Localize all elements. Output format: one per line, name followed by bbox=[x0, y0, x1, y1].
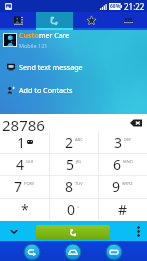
staticText: 28786 bbox=[2, 115, 45, 132]
staticText: 1 bbox=[17, 133, 26, 152]
button[interactable]: 2 bbox=[49, 131, 98, 153]
button[interactable]: More options bbox=[134, 224, 142, 238]
staticText: mer Care bbox=[39, 31, 70, 41]
staticText: DEF bbox=[124, 137, 132, 142]
staticText: TUV bbox=[75, 181, 83, 186]
button[interactable]: 4 bbox=[0, 153, 49, 175]
staticText: Mobile 121 bbox=[19, 42, 48, 49]
staticText: GHI bbox=[26, 159, 34, 164]
button[interactable]: 6 bbox=[98, 153, 147, 175]
staticText: MNO bbox=[123, 159, 133, 164]
staticText: 8 bbox=[65, 177, 74, 196]
staticText: + bbox=[77, 204, 80, 209]
button[interactable]: 3 bbox=[98, 131, 147, 153]
button[interactable]: * bbox=[0, 198, 49, 221]
staticText: PQRS bbox=[24, 181, 35, 186]
button[interactable]: Back bbox=[23, 243, 41, 261]
staticText: Add to Contacts bbox=[19, 85, 73, 95]
button[interactable]: Groups bbox=[110, 12, 147, 28]
button[interactable]: Add to Contacts bbox=[0, 83, 147, 97]
staticText: 2 bbox=[65, 133, 74, 152]
staticText: 5 bbox=[66, 155, 75, 174]
button[interactable]: 5 bbox=[49, 153, 98, 175]
button[interactable]: Home bbox=[64, 243, 82, 261]
button[interactable]: Favorites bbox=[73, 12, 110, 28]
button[interactable]: Collapse bbox=[7, 224, 21, 238]
staticText: 9 bbox=[112, 177, 121, 196]
staticText: 6 bbox=[113, 155, 122, 174]
button[interactable]: 8 bbox=[49, 175, 98, 198]
staticText: JKL bbox=[76, 159, 82, 164]
staticText: ABC bbox=[75, 137, 83, 142]
staticText: WXYZ bbox=[122, 181, 133, 186]
staticText: Custo bbox=[19, 31, 39, 41]
button[interactable]: Dialer bbox=[36, 12, 73, 28]
staticText: 21:22 bbox=[124, 1, 145, 12]
button[interactable]: Send text message bbox=[0, 60, 147, 74]
button[interactable]: 0 bbox=[49, 198, 98, 221]
button[interactable]: Custo bbox=[0, 31, 147, 49]
staticText: # bbox=[118, 200, 128, 219]
button[interactable]: 9 bbox=[98, 175, 147, 198]
staticText: 0 bbox=[67, 200, 76, 219]
staticText: 7 bbox=[14, 177, 23, 196]
staticText: 4 bbox=[16, 155, 25, 174]
button[interactable]: Call bbox=[36, 225, 110, 240]
button[interactable]: 7 bbox=[0, 175, 49, 198]
staticText: 68% bbox=[110, 3, 121, 10]
button[interactable]: Backspace bbox=[130, 118, 142, 128]
button[interactable]: Recents bbox=[105, 243, 123, 261]
button[interactable]: Contacts bbox=[0, 12, 36, 28]
staticText: 3 bbox=[114, 133, 123, 152]
staticText: * bbox=[21, 200, 29, 219]
button[interactable]: # bbox=[98, 198, 147, 221]
staticText: Send text message bbox=[19, 62, 83, 72]
button[interactable]: 1 bbox=[0, 131, 49, 153]
